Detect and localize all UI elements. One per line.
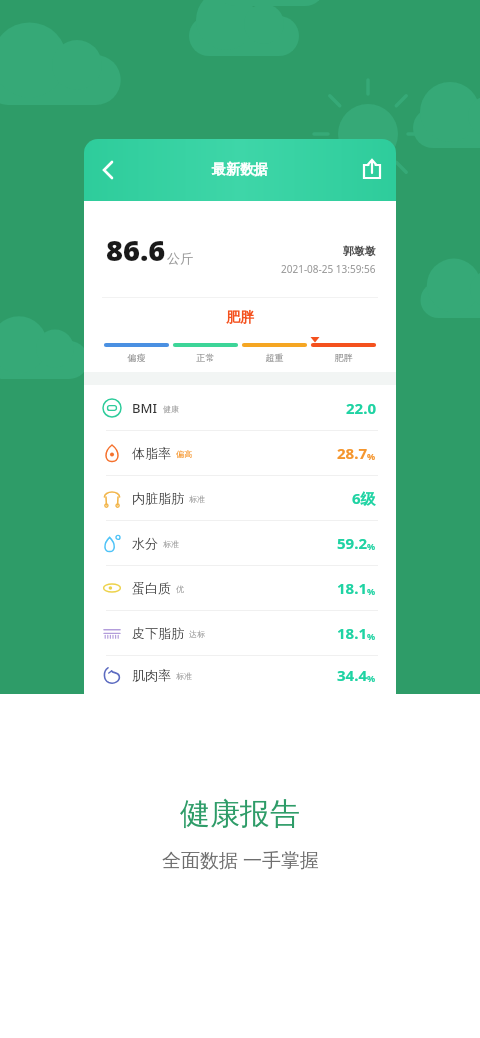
staticText: 22.0: [346, 398, 376, 418]
button[interactable]: Share: [354, 152, 390, 188]
staticText: 18.1: [337, 578, 367, 598]
staticText: 健康: [163, 404, 179, 414]
staticText: 皮下脂肪: [132, 625, 184, 641]
button[interactable]: 内脏脂肪: [84, 475, 396, 520]
staticText: 水分: [132, 535, 158, 551]
staticText: 标准: [189, 494, 205, 504]
staticText: 34.4: [337, 665, 367, 685]
button[interactable]: 水分: [84, 520, 396, 565]
button[interactable]: Back: [88, 150, 128, 190]
staticText: 偏瘦: [102, 352, 171, 363]
staticText: 健康报告: [180, 795, 300, 833]
staticText: 18.1: [337, 623, 367, 643]
staticText: 正常: [171, 352, 240, 363]
staticText: 最新数据: [212, 161, 268, 179]
staticText: 内脏脂肪: [132, 490, 184, 506]
button[interactable]: 体脂率: [84, 430, 396, 475]
staticText: BMI: [132, 399, 158, 417]
staticText: 标准: [176, 671, 192, 681]
staticText: 超重: [240, 352, 309, 363]
staticText: %: [367, 630, 376, 642]
staticText: %: [367, 585, 376, 597]
staticText: %: [367, 672, 376, 684]
staticText: 肥胖: [309, 352, 378, 363]
staticText: 体脂率: [132, 445, 171, 461]
staticText: 郭墩墩: [343, 244, 376, 258]
staticText: 肥胖: [84, 309, 396, 327]
staticText: 6级: [352, 488, 376, 508]
staticText: 86.6: [106, 230, 166, 269]
staticText: 公斤: [167, 250, 193, 266]
staticText: %: [367, 540, 376, 552]
button[interactable]: BMI: [84, 385, 396, 430]
staticText: 59.2: [337, 533, 367, 553]
staticText: 蛋白质: [132, 580, 171, 596]
staticText: 28.7: [337, 443, 367, 463]
staticText: 偏高: [176, 449, 192, 459]
button[interactable]: 蛋白质: [84, 565, 396, 610]
staticText: 肌肉率: [132, 667, 171, 683]
staticText: 全面数据 一手掌握: [162, 847, 319, 873]
staticText: %: [367, 450, 376, 462]
button[interactable]: 肌肉率: [84, 655, 396, 694]
button[interactable]: 皮下脂肪: [84, 610, 396, 655]
staticText: 标准: [163, 539, 179, 549]
staticText: 优: [176, 584, 184, 594]
staticText: 2021-08-25 13:59:56: [281, 262, 376, 276]
staticText: 达标: [189, 629, 205, 639]
